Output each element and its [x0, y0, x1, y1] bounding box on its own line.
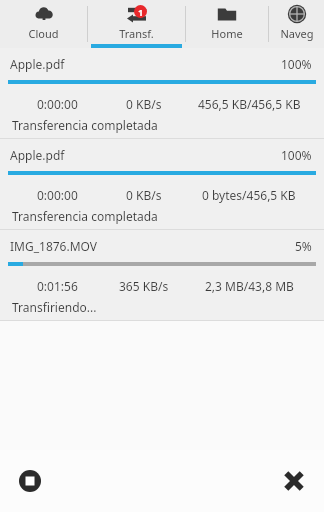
staticText: 365 KB/s [119, 278, 169, 294]
staticText: 2,3 MB/43,8 MB [205, 278, 294, 294]
button[interactable]: Apple.pdf [0, 48, 324, 139]
staticText: 0:00:00 [37, 96, 78, 112]
button[interactable]: Close [272, 459, 316, 503]
staticText: IMG_1876.MOV [10, 238, 98, 254]
button[interactable]: Home [186, 0, 268, 48]
button[interactable]: Apple.pdf [0, 139, 324, 230]
staticText: Transferencia completada [12, 117, 158, 133]
staticText: 456,5 KB/456,5 KB [198, 96, 301, 112]
staticText: 100% [281, 147, 312, 163]
staticText: Apple.pdf [10, 56, 65, 72]
button[interactable]: 1 [88, 0, 185, 48]
button[interactable]: Naveg [269, 0, 324, 48]
staticText: 0:00:00 [37, 187, 78, 203]
staticText: 1 [138, 6, 144, 18]
button[interactable]: IMG_1876.MOV [0, 230, 324, 321]
staticText: Naveg [280, 26, 314, 41]
staticText: 0:01:56 [37, 278, 78, 294]
staticText: 5% [295, 238, 312, 254]
button[interactable]: Cloud [0, 0, 87, 48]
staticText: Cloud [28, 26, 59, 41]
staticText: Transf. [119, 26, 154, 41]
staticText: 0 KB/s [126, 187, 162, 203]
staticText: 0 bytes/456,5 KB [202, 187, 296, 203]
staticText: Transfiriendo... [12, 299, 97, 315]
staticText: Transferencia completada [12, 208, 158, 224]
staticText: 100% [281, 56, 312, 72]
staticText: 0 KB/s [126, 96, 162, 112]
staticText: Apple.pdf [10, 147, 65, 163]
button[interactable]: Stop [8, 459, 52, 503]
staticText: Home [211, 26, 243, 41]
